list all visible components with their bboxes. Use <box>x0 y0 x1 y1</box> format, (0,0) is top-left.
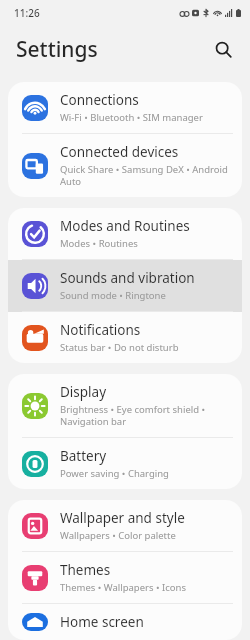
staticText: Brightness • Eye comfort shield • Naviga… <box>60 403 230 428</box>
staticText: Home screen <box>60 613 144 631</box>
staticText: Wallpaper and style <box>60 509 185 527</box>
staticText: Modes and Routines <box>60 217 190 235</box>
staticText: Wallpapers • Color palette <box>60 529 176 542</box>
button[interactable]: Display <box>8 374 242 438</box>
button[interactable]: Search <box>206 32 240 66</box>
button[interactable]: Themes <box>8 552 242 604</box>
button[interactable]: Sounds and vibration <box>8 260 242 312</box>
button[interactable]: Wallpaper and style <box>8 500 242 552</box>
staticText: Themes <box>60 561 111 579</box>
staticText: Settings <box>16 35 98 64</box>
button[interactable]: Connected devices <box>8 134 242 197</box>
staticText: Themes • Wallpapers • Icons <box>60 581 186 594</box>
staticText: Notifications <box>60 321 141 339</box>
staticText: Battery <box>60 447 107 465</box>
staticText: Wi-Fi • Bluetooth • SIM manager <box>60 111 203 124</box>
button[interactable]: Notifications <box>8 312 242 363</box>
staticText: Connected devices <box>60 143 179 161</box>
button[interactable]: Modes and Routines <box>8 208 242 260</box>
staticText: Power saving • Charging <box>60 467 169 480</box>
button[interactable]: Connections <box>8 82 242 134</box>
staticText: Quick Share • Samsung DeX • Android Auto <box>60 163 230 188</box>
staticText: Modes • Routines <box>60 237 138 250</box>
staticText: Display <box>60 383 107 401</box>
button[interactable]: Home screen <box>8 604 242 640</box>
button[interactable]: Battery <box>8 438 242 489</box>
staticText: 11:26 <box>14 6 40 20</box>
staticText: Status bar • Do not disturb <box>60 341 179 354</box>
staticText: Sound mode • Ringtone <box>60 289 166 302</box>
staticText: Connections <box>60 91 139 109</box>
staticText: Sounds and vibration <box>60 269 195 287</box>
